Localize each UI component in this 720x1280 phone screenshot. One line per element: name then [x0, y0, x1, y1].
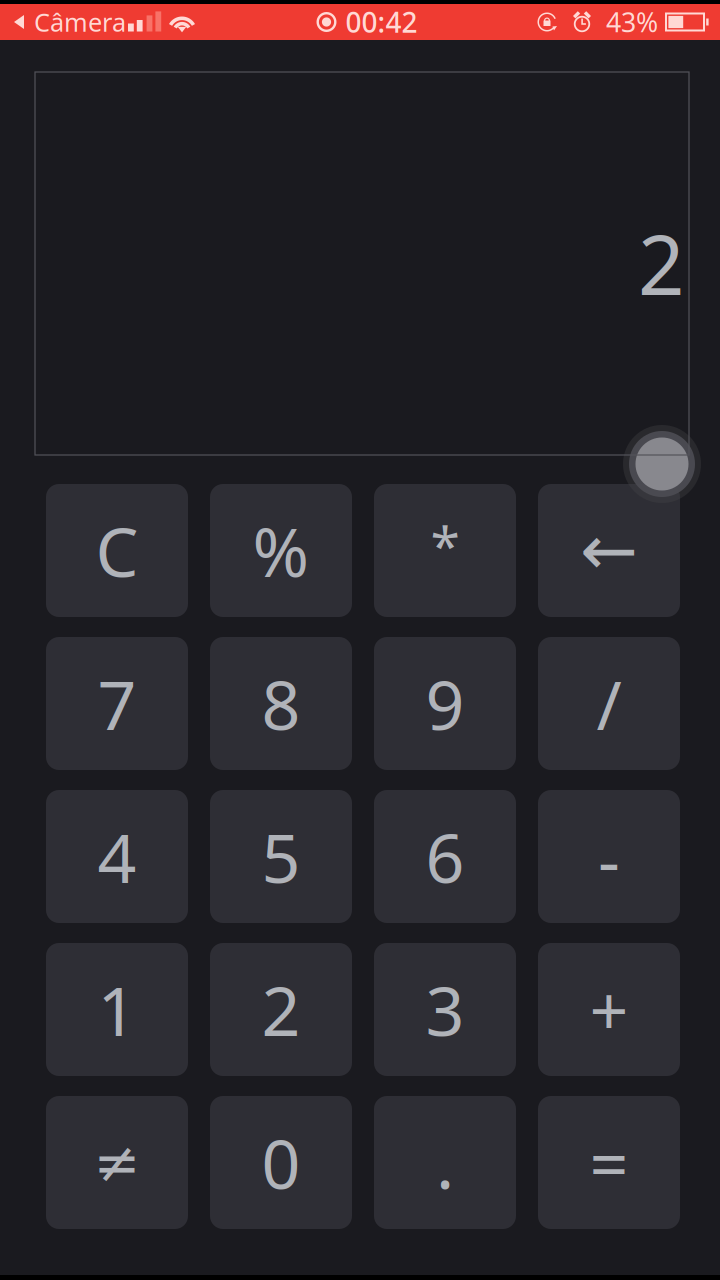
staticText: C [95, 505, 138, 596]
button[interactable]: Minus [538, 790, 680, 923]
staticText: 9 [425, 658, 464, 749]
button[interactable]: AssistiveTouch [623, 425, 701, 503]
staticText: 00:42 [345, 3, 417, 41]
staticText: / [596, 658, 621, 749]
staticText: 1 [97, 964, 136, 1055]
staticText: 7 [97, 658, 136, 749]
button[interactable]: Six [374, 790, 516, 923]
staticText: 43% [606, 4, 658, 40]
staticText: * [430, 509, 459, 580]
button[interactable]: Percent [210, 484, 352, 617]
button[interactable]: Decimal point [374, 1096, 516, 1229]
button[interactable]: Four [46, 790, 188, 923]
staticText: + [589, 964, 628, 1055]
button[interactable]: One [46, 943, 188, 1076]
button[interactable]: Equals [538, 1096, 680, 1229]
button[interactable]: Eight [210, 637, 352, 770]
staticText: 3 [425, 964, 464, 1055]
button[interactable]: Three [374, 943, 516, 1076]
button[interactable]: Zero [210, 1096, 352, 1229]
button[interactable]: Divide [538, 637, 680, 770]
staticText: ← [580, 511, 638, 590]
button[interactable]: Seven [46, 637, 188, 770]
staticText: 0 [261, 1117, 300, 1208]
button[interactable]: Nine [374, 637, 516, 770]
button[interactable]: Plus [538, 943, 680, 1076]
staticText: 4 [97, 811, 136, 902]
staticText: . [436, 1117, 454, 1208]
staticText: % [252, 505, 309, 596]
button[interactable]: Multiply [374, 484, 516, 617]
staticText: ≠ [93, 1131, 140, 1194]
button[interactable]: Câmera [13, 5, 128, 39]
button[interactable]: Clear [46, 484, 188, 617]
staticText: 8 [261, 658, 300, 749]
staticText: 2 [261, 964, 300, 1055]
staticText: = [589, 1117, 628, 1208]
staticText: 5 [261, 811, 300, 902]
button[interactable]: Five [210, 790, 352, 923]
staticText: - [598, 814, 620, 905]
staticText: 6 [425, 811, 464, 902]
button[interactable]: Two [210, 943, 352, 1076]
button[interactable]: Not equal [46, 1096, 188, 1229]
staticText: Câmera [34, 5, 126, 39]
staticText: 2 [638, 209, 685, 317]
button[interactable]: Backspace [538, 484, 680, 617]
